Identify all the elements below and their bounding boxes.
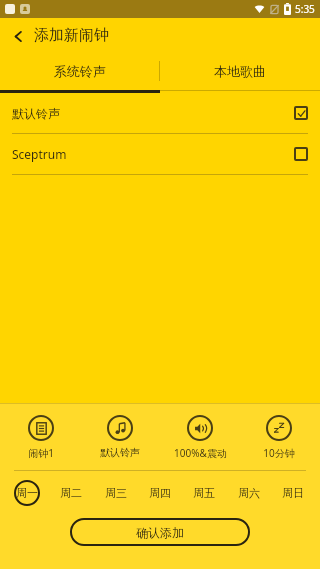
button[interactable]: 默认铃声 [0, 93, 320, 134]
button[interactable]: Back [8, 22, 111, 49]
staticText: 5:35 [295, 2, 315, 16]
staticText: 100%&震动 [174, 446, 227, 460]
button[interactable]: 周四 [147, 480, 173, 506]
button[interactable]: Ringtone [82, 413, 158, 461]
other: Back [10, 28, 26, 44]
button[interactable]: 周二 [58, 480, 84, 506]
staticText: 周二 [60, 486, 82, 500]
staticText: 周一 [16, 486, 38, 500]
staticText: 周六 [238, 486, 260, 500]
button[interactable]: Sceptrum [0, 134, 320, 175]
staticText: 本地歌曲 [214, 63, 266, 79]
button[interactable]: 周日 [280, 480, 306, 506]
button[interactable]: 系统铃声 [0, 52, 160, 90]
staticText: 确认添加 [136, 525, 184, 540]
staticText: 10分钟 [263, 446, 295, 460]
staticText: 添加新闹钟 [34, 26, 109, 45]
staticText: 默认铃声 [12, 106, 294, 121]
staticText: 周三 [105, 486, 127, 500]
button[interactable]: Alarm name [3, 413, 79, 462]
staticText: 系统铃声 [54, 63, 106, 79]
button[interactable]: Volume [162, 413, 238, 462]
button[interactable]: 周五 [191, 480, 217, 506]
button[interactable]: 本地歌曲 [160, 52, 320, 90]
button[interactable]: 周一 [14, 480, 40, 506]
button[interactable]: 周三 [103, 480, 129, 506]
button[interactable]: 周六 [236, 480, 262, 506]
staticText: 闹钟1 [28, 446, 54, 460]
staticText: 周日 [282, 486, 304, 500]
button[interactable]: Snooze [241, 413, 317, 462]
staticText: 周五 [193, 486, 215, 500]
staticText: Sceptrum [12, 146, 294, 162]
staticText: 周四 [149, 486, 171, 500]
button[interactable]: 确认添加 [70, 518, 250, 546]
staticText: 默认铃声 [100, 446, 140, 459]
